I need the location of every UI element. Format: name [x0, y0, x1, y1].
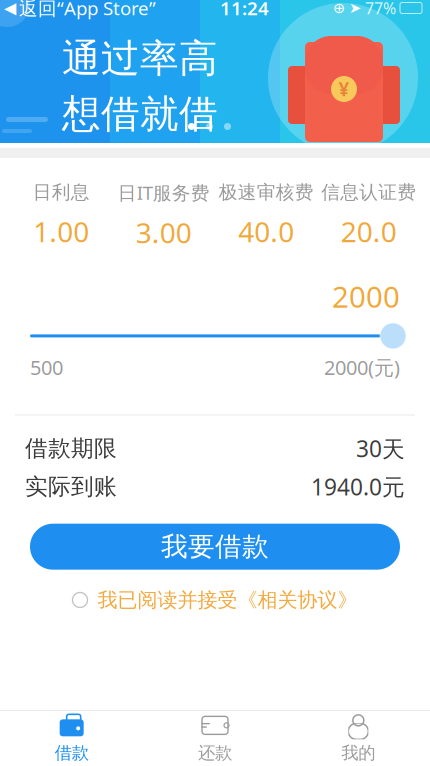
- staticText: ◀: [4, 0, 16, 17]
- staticText: 2000(元): [324, 354, 400, 380]
- staticText: 11:24: [220, 0, 269, 20]
- staticText: 77%: [365, 0, 396, 19]
- staticText: 极速审核费: [219, 181, 314, 204]
- staticText: 1.00: [33, 213, 89, 250]
- staticText: 信息认证费: [321, 181, 416, 204]
- staticText: 30天: [356, 433, 405, 464]
- button[interactable]: 还款: [143, 711, 287, 766]
- staticText: 2000: [332, 277, 400, 316]
- staticText: ⊕: [333, 0, 345, 16]
- staticText: 我已阅读并接受《相关协议》: [97, 588, 357, 612]
- staticText: 想借就借: [62, 90, 218, 138]
- staticText: 我要借款: [161, 530, 269, 563]
- staticText: 日IT服务费: [118, 180, 210, 205]
- staticText: 借款期限: [25, 435, 117, 462]
- button[interactable]: ◀: [0, 0, 156, 22]
- staticText: ➤: [349, 0, 361, 16]
- staticText: 1940.0元: [311, 472, 405, 502]
- staticText: 20.0: [341, 213, 397, 250]
- staticText: 返回“App Store”: [19, 0, 156, 20]
- staticText: 通过率高: [62, 35, 218, 82]
- button[interactable]: 我要借款: [30, 524, 400, 570]
- button[interactable]: 借款: [0, 711, 143, 766]
- staticText: 实际到账: [25, 473, 117, 500]
- staticText: 借款: [55, 742, 89, 764]
- staticText: 日利息: [33, 181, 90, 204]
- button[interactable]: 我的: [287, 711, 430, 766]
- staticText: 500: [30, 354, 63, 380]
- button[interactable]: 我已阅读并接受《相关协议》: [72, 582, 357, 618]
- staticText: 还款: [198, 742, 232, 764]
- staticText: 40.0: [238, 213, 294, 250]
- staticText: 3.00: [136, 214, 192, 251]
- staticText: ¥: [338, 77, 349, 101]
- staticText: 我的: [341, 742, 375, 764]
